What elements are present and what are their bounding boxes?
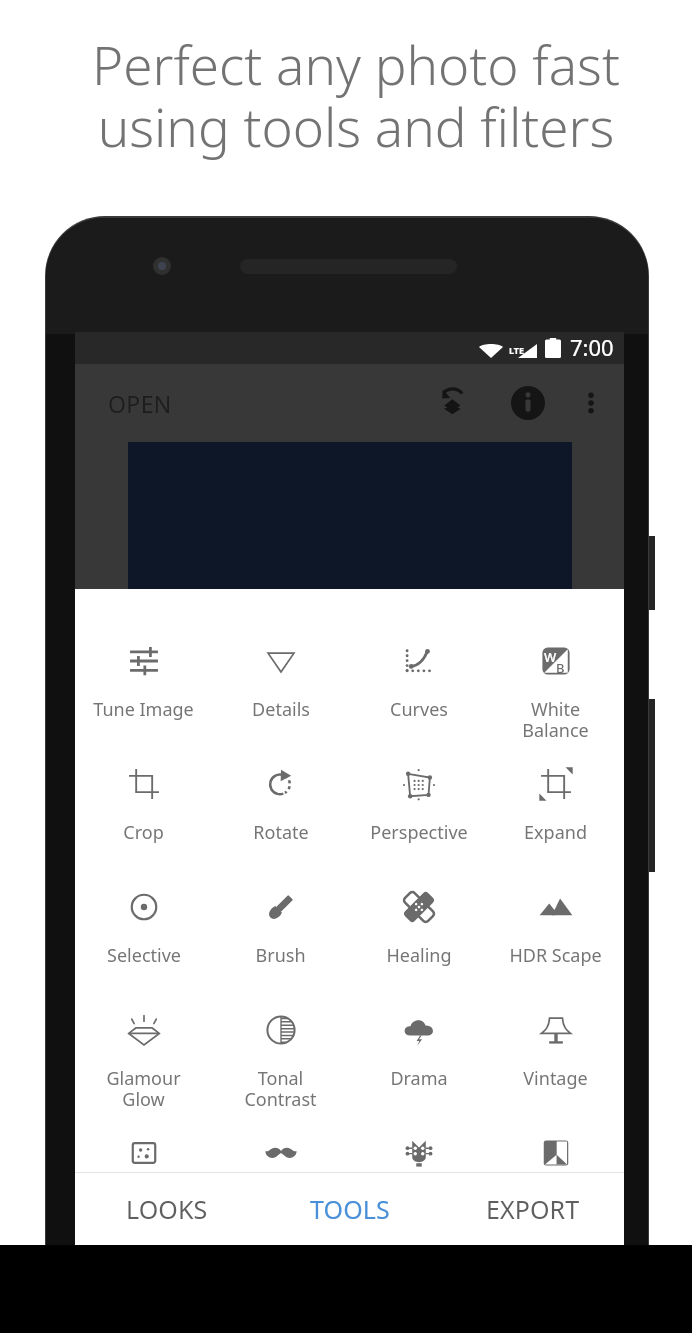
staticText: Curves xyxy=(390,697,448,722)
button[interactable]: Expand xyxy=(487,734,624,834)
staticText: Details xyxy=(252,697,310,722)
staticText: Expand xyxy=(524,820,587,845)
button[interactable]: OPEN xyxy=(75,380,184,427)
staticText: Perspective xyxy=(370,820,468,845)
button[interactable]: Info xyxy=(500,375,556,431)
button[interactable]: EXPORT xyxy=(441,1173,624,1245)
staticText: White Balance xyxy=(522,697,589,743)
button[interactable]: HDR Scape xyxy=(487,857,624,957)
button[interactable] xyxy=(487,1103,624,1203)
button[interactable]: Crop xyxy=(75,734,212,834)
button[interactable]: Healing xyxy=(350,857,487,957)
staticText: HDR Scape xyxy=(509,943,602,968)
button[interactable]: Details xyxy=(212,611,349,711)
button[interactable]: TOOLS xyxy=(258,1173,441,1245)
button[interactable]: LOOKS xyxy=(75,1173,258,1245)
button[interactable]: Curves xyxy=(350,611,487,711)
button[interactable]: Drama xyxy=(350,980,487,1080)
staticText: 7:00 xyxy=(570,332,614,361)
staticText: Healing xyxy=(386,943,452,968)
staticText: OPEN xyxy=(108,388,172,419)
button[interactable]: Selective xyxy=(75,857,212,957)
button[interactable] xyxy=(212,1103,349,1203)
button[interactable]: More options xyxy=(563,375,619,431)
staticText: W xyxy=(544,648,557,666)
button[interactable] xyxy=(350,1103,487,1203)
staticText: TOOLS xyxy=(310,1192,390,1226)
staticText: Brush xyxy=(255,943,306,968)
button[interactable]: Perspective xyxy=(350,734,487,834)
staticText: Tonal Contrast xyxy=(244,1066,317,1112)
button[interactable]: Tune Image xyxy=(75,611,212,711)
staticText: B xyxy=(556,659,565,677)
button[interactable]: Rotate xyxy=(212,734,349,834)
staticText: Perfect any photo fast using tools and f… xyxy=(92,28,620,162)
staticText: Selective xyxy=(107,943,181,968)
button[interactable] xyxy=(75,1103,212,1203)
button[interactable]: Revert xyxy=(425,375,481,431)
staticText: Rotate xyxy=(253,820,309,845)
button[interactable]: Tonal Contrast xyxy=(212,980,349,1080)
button[interactable]: W xyxy=(487,611,624,711)
staticText: Vintage xyxy=(523,1066,588,1091)
staticText: LOOKS xyxy=(126,1192,208,1226)
staticText: Drama xyxy=(390,1066,448,1091)
button[interactable]: Brush xyxy=(212,857,349,957)
staticText: Tune Image xyxy=(93,697,194,722)
button[interactable]: Glamour Glow xyxy=(75,980,212,1080)
staticText: Glamour Glow xyxy=(106,1066,181,1112)
button[interactable]: Vintage xyxy=(487,980,624,1080)
staticText: Crop xyxy=(123,820,164,845)
staticText: EXPORT xyxy=(486,1192,580,1226)
staticText: LTE xyxy=(509,344,525,356)
